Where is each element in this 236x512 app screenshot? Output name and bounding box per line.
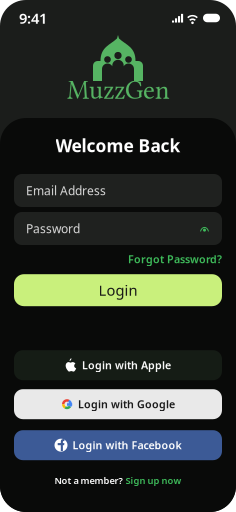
staticText: Email Address: [26, 182, 106, 198]
staticText: Welcome Back: [55, 134, 180, 157]
staticText: Forgot Password?: [128, 252, 222, 266]
button[interactable]: Login with Apple: [14, 350, 222, 380]
staticText: Login with Google: [78, 397, 175, 411]
staticText: Login with Facebook: [72, 438, 181, 452]
staticText: Sign up now: [125, 474, 181, 487]
button[interactable]: Login with Facebook: [14, 430, 222, 460]
staticText: Login: [98, 280, 137, 300]
button[interactable]: Sign up now: [125, 474, 181, 487]
staticText: Password: [26, 220, 80, 236]
button[interactable]: Login: [14, 274, 222, 306]
staticText: 9:41: [19, 8, 47, 28]
button[interactable]: Forgot Password?: [128, 252, 222, 266]
button[interactable]: Login with Google: [14, 389, 222, 419]
staticText: Not a member?: [54, 474, 122, 487]
staticText: Login with Apple: [82, 358, 171, 372]
staticText: MuzzGen: [67, 75, 169, 105]
